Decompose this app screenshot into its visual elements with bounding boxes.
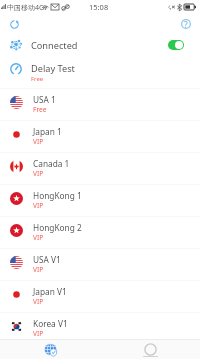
button[interactable]: Korea V1	[0, 313, 200, 344]
button[interactable]: Delay Test	[0, 58, 200, 85]
staticText: USA V1	[33, 254, 61, 265]
staticText: VIP	[33, 169, 44, 178]
button[interactable]: Home	[144, 343, 157, 356]
staticText: Japan 1	[33, 126, 62, 137]
staticText: VIP	[33, 233, 44, 242]
staticText: Delay Test	[31, 62, 75, 75]
staticText: VIP	[33, 329, 44, 338]
button[interactable]: HongKong 1	[0, 185, 200, 216]
staticText: VIP	[33, 265, 44, 274]
staticText: VIP	[33, 297, 44, 306]
button[interactable]: USA 1	[0, 89, 200, 120]
button[interactable]: Help	[176, 14, 196, 34]
staticText: 中国移动4G	[7, 3, 45, 13]
staticText: Free	[33, 105, 47, 114]
staticText: 15:08	[89, 2, 109, 12]
button[interactable]: VPN toggle	[168, 40, 184, 50]
button[interactable]: USA V1	[0, 249, 200, 280]
staticText: HongKong 2	[33, 222, 82, 233]
button[interactable]: HongKong 2	[0, 217, 200, 248]
staticText: HongKong 1	[33, 190, 82, 201]
staticText: ?	[184, 19, 188, 29]
staticText: Free	[31, 75, 44, 83]
button[interactable]: Servers	[40, 340, 60, 359]
button[interactable]: Connected	[0, 34, 200, 56]
staticText: Canada 1	[33, 158, 70, 169]
staticText: VIP	[33, 137, 44, 146]
button[interactable]: Refresh	[4, 14, 24, 34]
button[interactable]: Canada 1	[0, 153, 200, 184]
staticText: USA 1	[33, 94, 56, 105]
staticText: Connected	[31, 39, 78, 52]
staticText: Japan V1	[33, 286, 67, 297]
staticText: VIP	[33, 201, 44, 210]
staticText: Korea V1	[33, 318, 68, 329]
button[interactable]: Japan V1	[0, 281, 200, 312]
button[interactable]: Japan 1	[0, 121, 200, 152]
